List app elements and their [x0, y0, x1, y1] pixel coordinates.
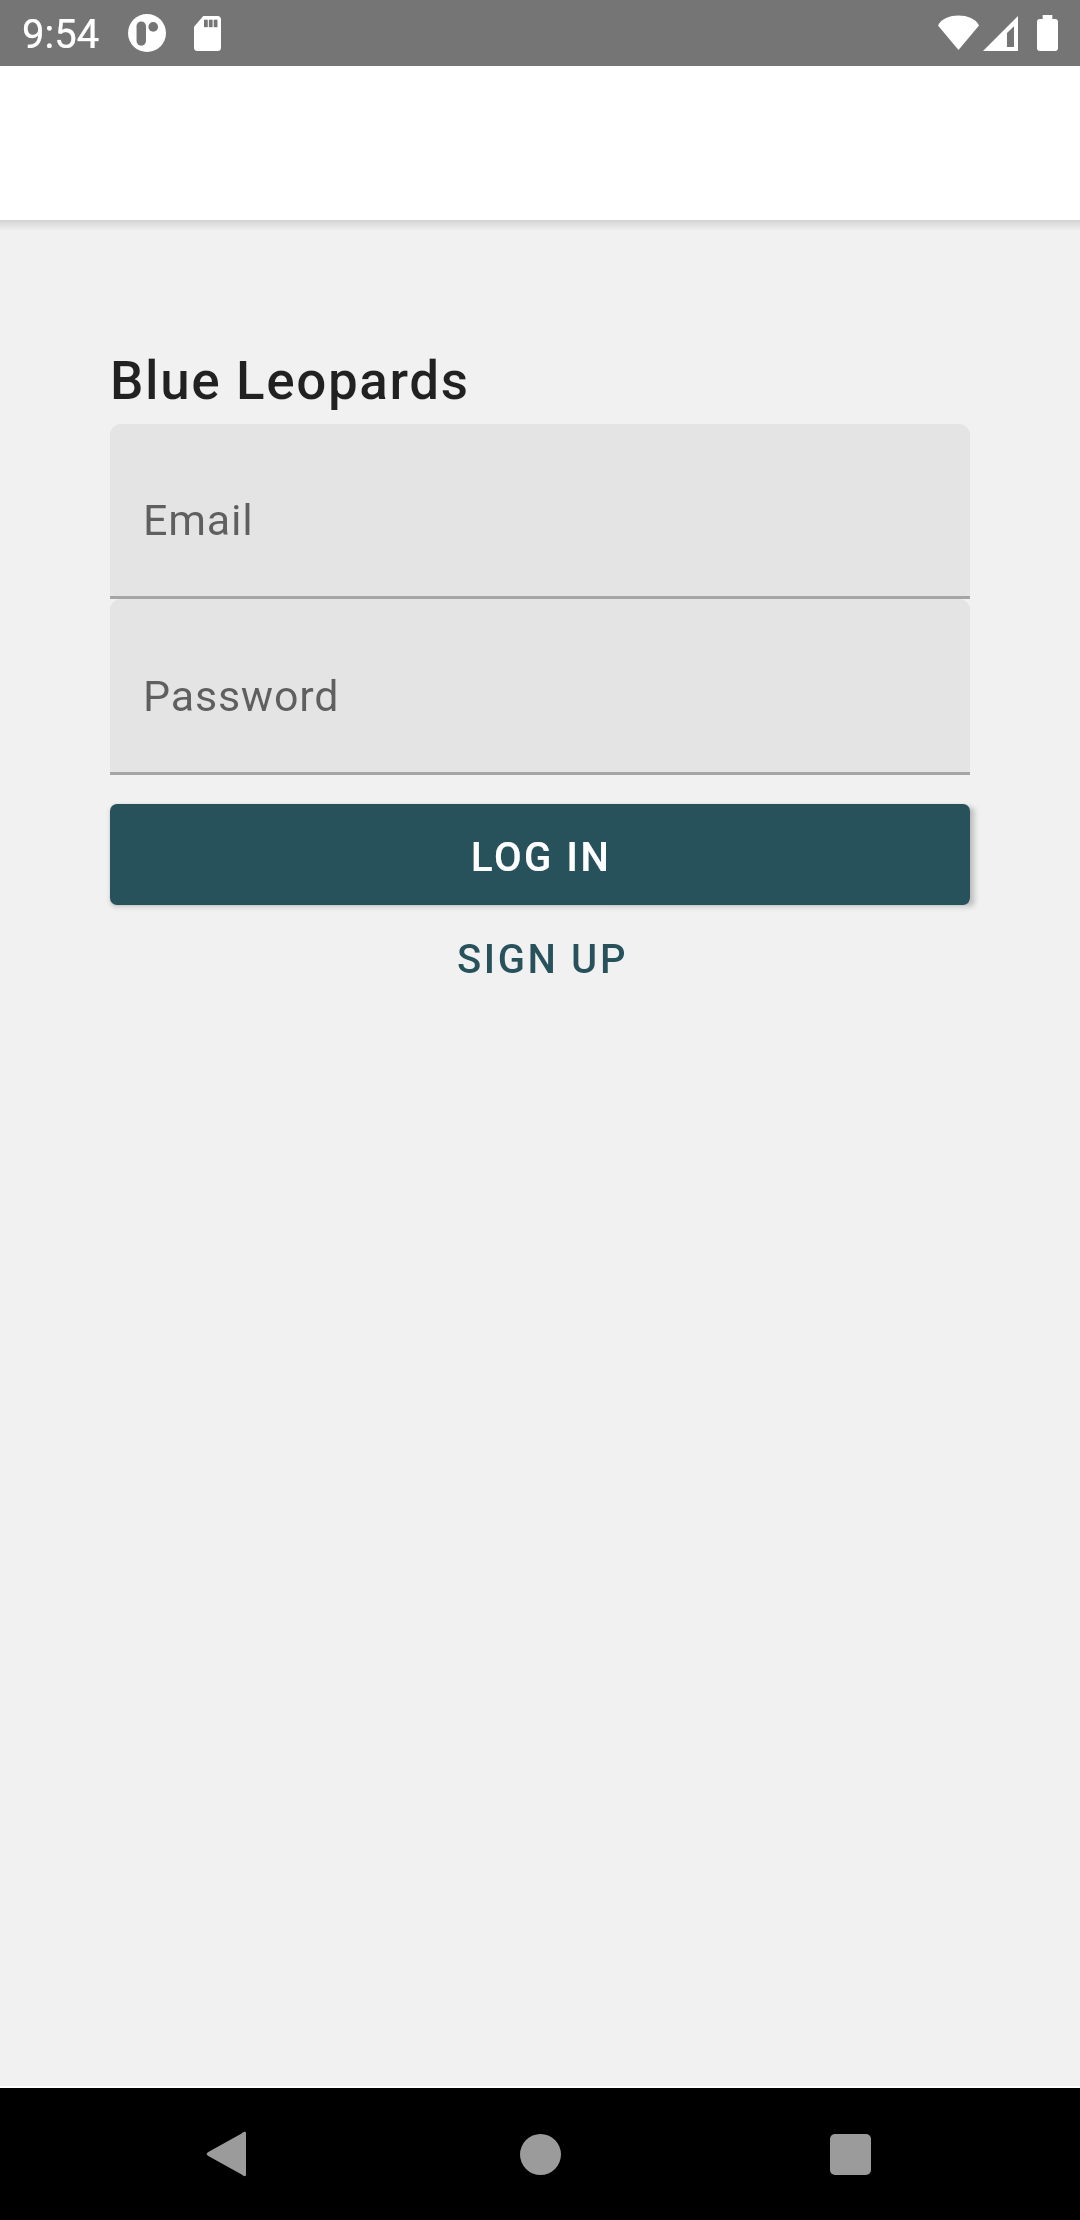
button[interactable]: Email — [110, 424, 970, 599]
button[interactable]: Recent apps — [790, 2094, 910, 2214]
button[interactable]: LOG IN — [110, 804, 970, 905]
staticText: SIGN UP — [457, 936, 629, 983]
staticText: Blue Leopards — [110, 350, 470, 412]
button[interactable]: Home — [480, 2094, 600, 2214]
staticText: LOG IN — [471, 834, 612, 881]
button[interactable]: Back — [165, 2094, 285, 2214]
staticText: Email — [143, 495, 254, 545]
staticText: Password — [143, 671, 340, 721]
button[interactable]: Password — [110, 599, 970, 775]
staticText: 9:54 — [22, 11, 100, 58]
button[interactable]: SIGN UP — [110, 905, 970, 1006]
